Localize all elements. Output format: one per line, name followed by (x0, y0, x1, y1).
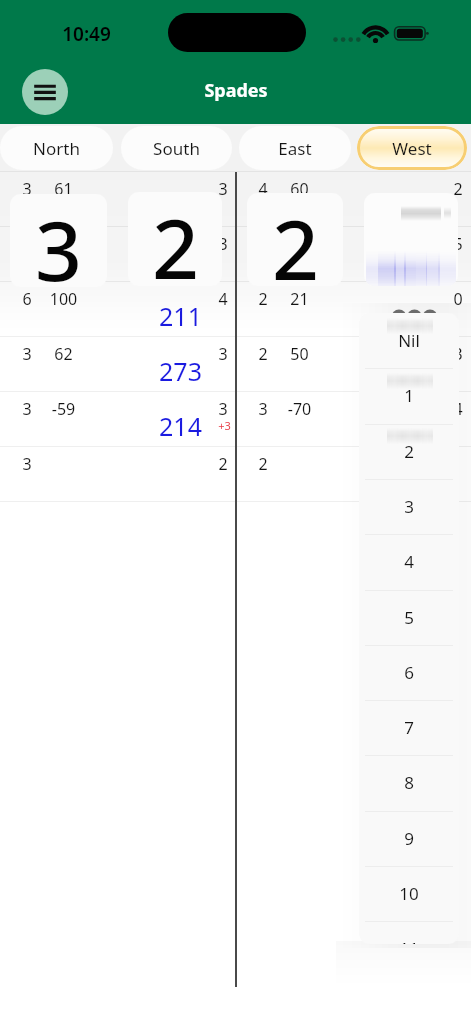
staticText: 3 (214, 343, 232, 365)
button[interactable]: 3 (0, 172, 236, 226)
staticText: 3 (254, 398, 272, 420)
staticText: 3 (18, 453, 36, 475)
staticText: 4 (404, 550, 414, 573)
button[interactable]: South (121, 126, 232, 170)
staticText: 2 (254, 288, 272, 310)
button[interactable]: 11 (359, 921, 459, 944)
staticText: +3 (218, 418, 231, 433)
staticText: 1 (404, 384, 414, 407)
staticText: 4 (254, 178, 272, 200)
staticText: 9 (404, 827, 414, 850)
button[interactable]: 1 (359, 368, 459, 423)
staticText: -70 (281, 398, 318, 420)
staticText: 2 (152, 192, 199, 285)
staticText: Nil (398, 329, 420, 352)
staticText: 7 (404, 716, 414, 739)
staticText (45, 233, 82, 255)
staticText: 50 (281, 343, 318, 365)
staticText: 6 (404, 661, 414, 684)
button[interactable]: 6 (359, 645, 459, 700)
staticText: 214 (159, 409, 202, 443)
staticText: North (33, 137, 80, 160)
button[interactable]: 6 (0, 282, 236, 336)
staticText: East (278, 137, 312, 160)
staticText: 8 (404, 771, 414, 794)
staticText: -59 (45, 398, 82, 420)
staticText: 21 (281, 288, 318, 310)
button[interactable]: 3 (0, 392, 236, 446)
staticText: 10:49 (62, 21, 111, 47)
button[interactable]: West (357, 126, 467, 170)
staticText: 11 (399, 937, 419, 944)
button[interactable]: 3 (236, 392, 471, 446)
button[interactable]: East (239, 126, 351, 170)
button[interactable]: 2 (236, 447, 471, 501)
staticText: 100 (45, 288, 82, 310)
button[interactable]: 4 (236, 172, 471, 226)
button[interactable]: 3 (0, 447, 236, 501)
staticText: 3 (18, 343, 36, 365)
staticText: 3 (18, 398, 36, 420)
staticText: 2 (254, 343, 272, 365)
button[interactable]: 5 (236, 227, 471, 281)
staticText: 2 (272, 193, 319, 285)
button[interactable]: 9 (359, 811, 459, 866)
button[interactable]: 8 (359, 755, 459, 810)
staticText: 0 (449, 288, 467, 310)
button[interactable]: 2 (236, 337, 471, 391)
staticText: 5 (449, 233, 467, 255)
button[interactable]: 3 (0, 227, 236, 281)
staticText: 2 (214, 453, 232, 475)
button[interactable]: 2 (236, 282, 471, 336)
staticText: 3 (449, 343, 467, 365)
staticText: 3 (214, 178, 232, 200)
staticText: 2 (254, 453, 272, 475)
button[interactable]: 3 (359, 479, 459, 534)
staticText: Spades (204, 78, 268, 103)
staticText: 6 (18, 288, 36, 310)
staticText: 3 (18, 178, 36, 200)
staticText: 4 (449, 398, 467, 420)
staticText: West (392, 137, 432, 160)
button[interactable]: 5 (359, 590, 459, 645)
staticText: 2 (449, 178, 467, 200)
staticText: 273 (159, 354, 202, 388)
staticText: South (153, 137, 200, 160)
button[interactable]: 7 (359, 700, 459, 755)
staticText: 61 (45, 178, 82, 200)
staticText: 211 (159, 299, 202, 333)
staticText: 3 (404, 495, 414, 518)
staticText: 3 (35, 194, 82, 286)
staticText: 10 (399, 882, 419, 905)
staticText: 5 (404, 606, 414, 629)
button[interactable]: North (0, 126, 113, 170)
button[interactable]: 3 (0, 337, 236, 391)
staticText: 62 (45, 343, 82, 365)
button[interactable]: 10 (359, 866, 459, 921)
button[interactable]: 4 (359, 534, 459, 589)
staticText: 4 (214, 288, 232, 310)
staticText: 2 (404, 440, 414, 463)
staticText: 3 (214, 398, 232, 420)
button[interactable]: Nil (359, 313, 459, 368)
button[interactable]: Menu (22, 69, 68, 115)
button[interactable]: 2 (359, 424, 459, 479)
staticText: 3 (214, 233, 232, 255)
staticText (281, 233, 318, 255)
staticText: 60 (281, 178, 318, 200)
